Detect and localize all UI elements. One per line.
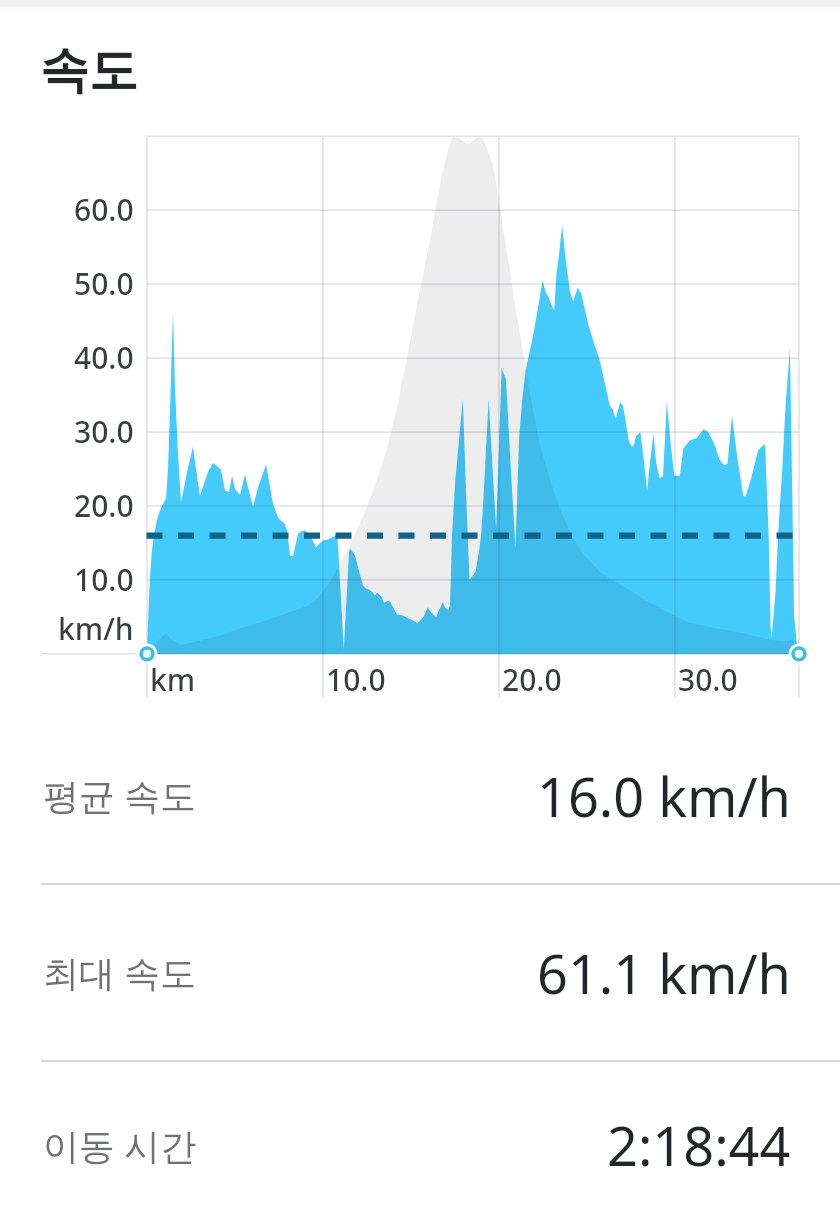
staticText: 평균 속도	[43, 771, 197, 820]
staticText: km	[150, 659, 196, 700]
staticText: 10.0	[74, 559, 134, 600]
staticText: 이동 시간	[43, 1121, 197, 1170]
staticText: 60.0	[74, 189, 134, 230]
staticText: 16.0 km/h	[537, 759, 791, 833]
staticText: 30.0	[678, 659, 738, 700]
staticText: 20.0	[74, 485, 134, 526]
staticText: 2:18:44	[607, 1108, 791, 1182]
staticText: 40.0	[74, 337, 134, 378]
button[interactable]: 평균 속도	[0, 708, 840, 883]
staticText: 50.0	[74, 263, 134, 304]
staticText: 30.0	[74, 411, 134, 452]
staticText: 10.0	[326, 659, 386, 700]
staticText: 속도	[40, 40, 138, 102]
staticText: 20.0	[502, 659, 562, 700]
staticText: 61.1 km/h	[537, 936, 791, 1010]
button[interactable]: 최대 속도	[0, 885, 840, 1060]
button[interactable]: 이동 시간	[0, 1062, 840, 1228]
staticText: km/h	[58, 608, 134, 649]
staticText: 최대 속도	[43, 948, 197, 997]
